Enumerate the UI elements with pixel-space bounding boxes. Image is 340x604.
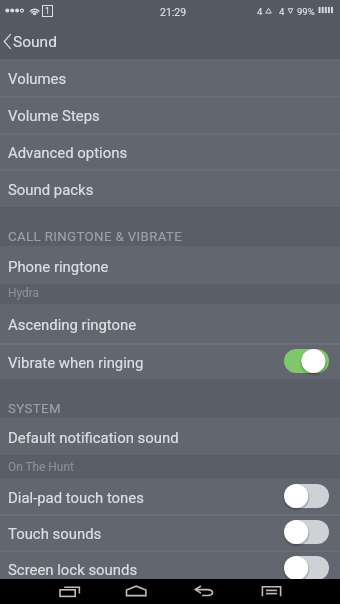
button[interactable]: Volumes [0, 59, 340, 96]
staticText: Screen lock sounds [8, 561, 284, 578]
button[interactable]: Sound packs [0, 169, 340, 207]
button[interactable]: Recents [36, 579, 104, 604]
staticText: Hydra [8, 286, 40, 300]
button[interactable]: Phone ringtone [0, 246, 340, 284]
staticText: Touch sounds [8, 525, 284, 542]
button[interactable]: Menu [240, 579, 308, 604]
button[interactable]: Vibrate when ringing [0, 343, 340, 379]
staticText: 4 [257, 6, 263, 17]
staticText: Sound [13, 33, 57, 51]
staticText: Volumes [8, 70, 329, 87]
staticText: SYSTEM [8, 401, 61, 417]
button[interactable]: Touch sounds [0, 514, 340, 550]
button[interactable]: Ascending ringtone [0, 304, 340, 343]
staticText: Sound packs [8, 181, 329, 198]
staticText: Volume Steps [8, 107, 329, 124]
button[interactable]: Home [104, 579, 172, 604]
staticText: Dial-pad touch tones [8, 489, 284, 506]
button[interactable]: Back [172, 579, 240, 604]
staticText: 99% [297, 6, 315, 17]
staticText: Vibrate when ringing [8, 354, 284, 371]
staticText: Phone ringtone [8, 258, 329, 275]
staticText: CALL RINGTONE & VIBRATE [8, 229, 183, 245]
button[interactable]: Volume Steps [0, 96, 340, 133]
button[interactable]: Back [0, 24, 340, 59]
button[interactable]: Screen lock sounds [0, 550, 340, 579]
button[interactable]: Dial-pad touch tones [0, 478, 340, 514]
staticText: Advanced options [8, 144, 329, 161]
staticText: Ascending ringtone [8, 316, 329, 333]
button[interactable]: Advanced options [0, 133, 340, 169]
staticText: 21:29 [160, 6, 187, 18]
staticText: On The Hunt [8, 460, 74, 474]
staticText: 4 [279, 6, 285, 17]
staticText: 1 [45, 6, 50, 16]
button[interactable]: Default notification sound [0, 418, 340, 455]
staticText: Default notification sound [8, 429, 329, 446]
